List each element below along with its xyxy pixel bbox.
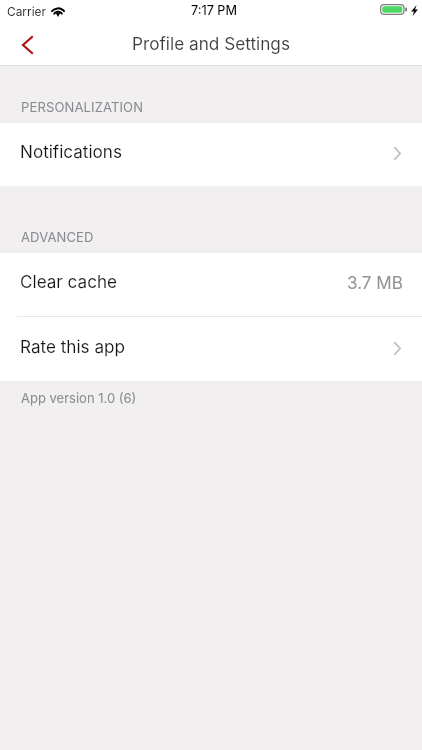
button[interactable]: Back [0,24,52,65]
staticText: ADVANCED [21,229,94,245]
button[interactable]: Clear cache [0,253,422,316]
staticText: Rate this app [20,336,125,357]
staticText: App version 1.0 (6) [21,390,137,406]
staticText: Clear cache [20,271,117,292]
button[interactable]: Rate this app [0,317,422,381]
staticText: PERSONALIZATION [21,99,144,115]
staticText: Carrier [7,4,46,18]
button[interactable]: Notifications [0,123,422,186]
staticText: 7:17 PM [191,3,237,18]
staticText: 3.7 MB [347,272,403,293]
staticText: Profile and Settings [132,33,290,54]
staticText: Notifications [20,141,122,162]
